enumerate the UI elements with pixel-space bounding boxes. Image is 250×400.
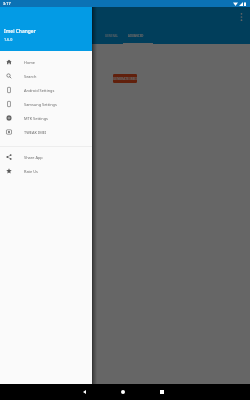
staticText: MTK Settings — [24, 116, 48, 121]
staticText: ADVANCED — [128, 34, 144, 38]
button[interactable]: Back — [74, 384, 94, 400]
button[interactable]: MTK Settings — [0, 111, 92, 125]
staticText: 1.6.0 — [4, 37, 13, 42]
staticText: Android Settings — [24, 88, 55, 93]
button[interactable]: Home — [0, 55, 92, 69]
staticText: Samsung Settings — [24, 102, 57, 107]
button[interactable]: More options — [236, 7, 247, 27]
button[interactable]: Home — [113, 384, 133, 400]
staticText: GENERATE IMEI — [113, 77, 137, 81]
button[interactable]: ADVANCED — [123, 27, 153, 44]
button[interactable]: GENERATE IMEI — [113, 74, 137, 83]
button[interactable]: GENERAL — [100, 27, 123, 44]
button[interactable]: Android Settings — [0, 83, 92, 97]
button[interactable]: Search — [0, 69, 92, 83]
button[interactable]: Share App — [0, 150, 92, 164]
button[interactable]: Samsung Settings — [0, 97, 92, 111]
staticText: Imei Changer — [4, 28, 36, 35]
staticText: Home — [24, 60, 36, 65]
staticText: Rate Us — [24, 169, 38, 174]
button[interactable]: TWEAK IMEI — [0, 125, 92, 139]
staticText: 3:17 — [3, 1, 11, 6]
staticText: GENERAL — [105, 34, 118, 38]
staticText: Share App — [24, 155, 43, 160]
button[interactable]: Recents — [152, 384, 172, 400]
staticText: Search — [24, 74, 37, 79]
button[interactable]: Rate Us — [0, 164, 92, 178]
staticText: TWEAK IMEI — [24, 130, 47, 135]
